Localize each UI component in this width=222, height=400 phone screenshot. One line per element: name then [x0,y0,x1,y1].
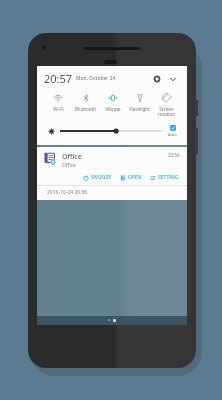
staticText: WiFi ADB [151,76,175,81]
staticText: 20:57 [44,71,73,86]
staticText: Screen rotation [158,106,175,117]
staticText: airtel [39,75,55,81]
button[interactable]: Settings [150,72,164,86]
staticText: Wi-Fi [53,106,64,112]
staticText: SNOOZE [91,174,112,181]
button[interactable]: Auto brightness [165,125,180,137]
staticText: Office [62,162,76,169]
button[interactable]: Screen rotation [153,90,180,118]
button[interactable]: SNOOZE [82,173,113,182]
staticText: TUTFS [55,76,81,81]
button[interactable]: SETTING [149,173,180,182]
button[interactable]: Wi-Fi [44,90,72,113]
button[interactable] [60,124,162,138]
button[interactable]: Flashlight [126,90,153,113]
button[interactable]: Vibrate [99,90,126,113]
staticText: CLEAR [175,75,185,81]
staticText: Office [62,152,82,162]
staticText: Mon, October 24 [76,75,116,82]
staticText: SETTING [158,174,179,181]
staticText: Vibrate [105,106,121,112]
button[interactable]: Office [37,147,187,171]
staticText: OPEN [128,174,142,181]
staticText: Flashlight [129,106,150,112]
staticText: 20:56 [168,152,180,158]
staticText: Auto [168,132,177,137]
staticText: 2016-10-24 20:56 [47,189,88,196]
button[interactable]: Collapse [166,72,180,86]
button[interactable]: Bluetooth [72,90,99,113]
button[interactable]: OPEN [119,173,143,182]
staticText: Bluetooth [75,106,96,112]
button[interactable]: Brightness mode [44,124,58,138]
staticText: Volume button [81,76,115,81]
button[interactable]: 2016-10-24 20:56 [37,186,187,200]
